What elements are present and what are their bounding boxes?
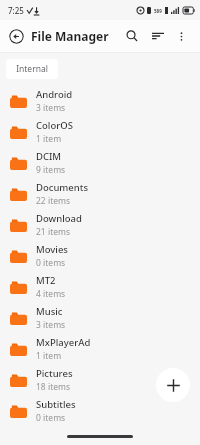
staticText: Download [36, 212, 82, 225]
button[interactable]: Android [0, 85, 200, 116]
staticText: Subtitles [36, 398, 76, 411]
button[interactable]: Internal [6, 59, 58, 79]
staticText: Internal [16, 63, 48, 75]
staticText: 9 items [36, 164, 66, 176]
staticText: ColorOS [36, 119, 73, 132]
button[interactable]: Subtitles [0, 395, 200, 426]
button[interactable]: Back [9, 29, 24, 44]
button[interactable]: Sort [147, 25, 169, 47]
staticText: 1 item [36, 133, 62, 145]
staticText: 0 items [36, 412, 66, 424]
staticText: 7:25 [8, 5, 24, 16]
staticText: 4 items [36, 288, 66, 300]
staticText: Movies [36, 243, 68, 256]
button[interactable]: Search [121, 25, 143, 47]
staticText: 22 items [36, 195, 71, 207]
button[interactable]: DCIM [0, 147, 200, 178]
staticText: Pictures [36, 367, 73, 380]
button[interactable]: Music [0, 302, 200, 333]
staticText: Documents [36, 181, 89, 194]
staticText: Music [36, 305, 63, 318]
button[interactable]: More options [171, 26, 191, 46]
staticText: 3 items [36, 102, 66, 114]
staticText: Android [36, 88, 73, 101]
staticText: 1 item [36, 350, 62, 362]
button[interactable]: ColorOS [0, 116, 200, 147]
staticText: 589 [154, 8, 162, 14]
staticText: 0 items [36, 257, 66, 269]
button[interactable]: MxPlayerAd [0, 333, 200, 364]
button[interactable]: Documents [0, 178, 200, 209]
button[interactable]: Movies [0, 240, 200, 271]
button[interactable]: Download [0, 209, 200, 240]
button[interactable]: MT2 [0, 271, 200, 302]
button[interactable]: Pictures [0, 364, 200, 395]
staticText: 3 items [36, 319, 66, 331]
staticText: DCIM [36, 150, 62, 163]
staticText: File Manager [31, 28, 109, 44]
staticText: 21 items [36, 226, 71, 238]
button[interactable]: Add [156, 368, 190, 402]
staticText: MxPlayerAd [36, 336, 91, 349]
staticText: 18 items [36, 381, 71, 393]
staticText: MT2 [36, 274, 56, 287]
